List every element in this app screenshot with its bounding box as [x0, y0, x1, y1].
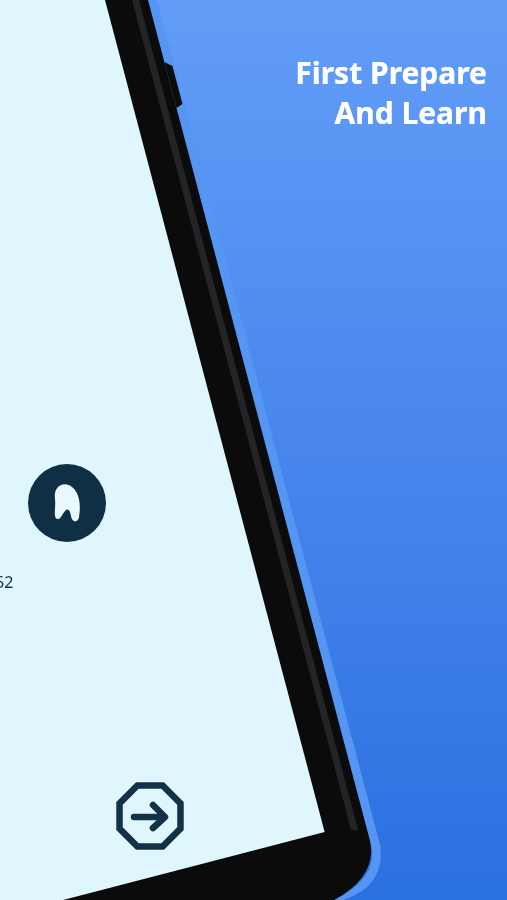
staticText: First Prepare And Learn	[295, 52, 487, 133]
staticText: 62	[0, 571, 14, 593]
button[interactable]: Next	[114, 780, 186, 852]
button[interactable]: Tooth category	[28, 464, 106, 542]
